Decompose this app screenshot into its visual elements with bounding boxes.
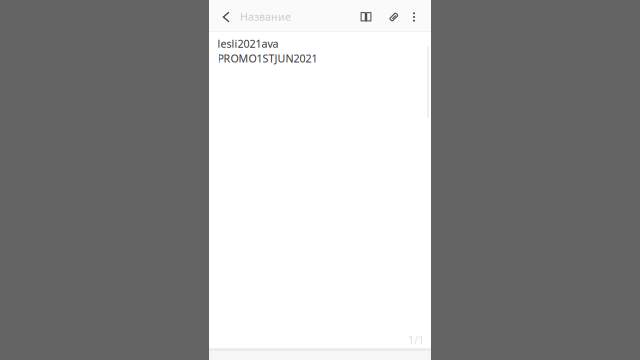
staticText: lesli2021ava [217, 36, 278, 51]
staticText: Название [240, 9, 291, 24]
staticText: PROMO1STJUN2021 [217, 51, 317, 65]
button[interactable]: More options [404, 1, 424, 32]
button[interactable]: Back [213, 1, 239, 32]
button[interactable]: Название [240, 1, 348, 32]
button[interactable]: lesli2021ava [209, 32, 431, 65]
button[interactable]: Attach file [382, 1, 406, 32]
button[interactable]: Reading view [354, 1, 378, 32]
staticText: 1/1 [408, 333, 424, 347]
